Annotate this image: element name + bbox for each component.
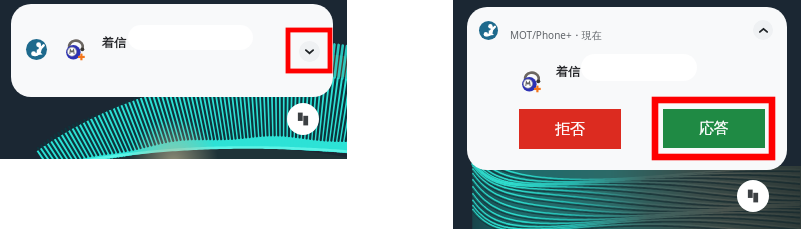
staticText: 着信 bbox=[102, 35, 126, 50]
staticText: 応答 bbox=[699, 119, 729, 138]
button[interactable]: Switch wallpaper bbox=[737, 180, 769, 212]
staticText: 拒否 bbox=[555, 120, 585, 139]
button[interactable]: 着信 bbox=[11, 4, 333, 97]
button[interactable]: Switch wallpaper bbox=[287, 103, 319, 135]
staticText: 着信 bbox=[556, 64, 580, 79]
button[interactable]: 拒否 bbox=[519, 109, 621, 149]
button[interactable]: 応答 bbox=[663, 109, 765, 148]
button[interactable]: Collapse notification bbox=[753, 20, 773, 40]
button[interactable]: Expand notification bbox=[299, 41, 320, 62]
button[interactable]: MOT/Phone+・現在 bbox=[467, 7, 787, 170]
staticText: MOT/Phone+・現在 bbox=[510, 28, 602, 42]
